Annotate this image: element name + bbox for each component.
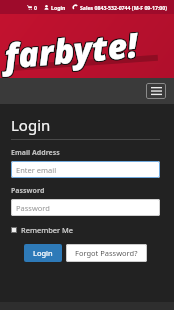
- staticText: 0: [34, 4, 37, 11]
- staticText: Forgot Password?: [75, 248, 138, 258]
- staticText: Password: [11, 186, 45, 196]
- other: Account: [44, 5, 49, 10]
- other: Phone: [73, 5, 78, 10]
- staticText: farbyte!: [2, 21, 140, 79]
- staticText: Login: [11, 115, 51, 135]
- button[interactable]: Password: [11, 199, 160, 216]
- staticText: farbyte!: [3, 20, 141, 78]
- button[interactable]: Forgot Password?: [66, 244, 147, 262]
- button[interactable]: Account: [43, 4, 67, 11]
- button[interactable]: Menu: [146, 83, 166, 99]
- staticText: Login: [33, 248, 53, 258]
- button[interactable]: Phone: [72, 4, 169, 11]
- staticText: farbyte!: [1, 20, 139, 78]
- button[interactable]: farbyte! home: [2, 21, 140, 79]
- button[interactable]: Enter email: [11, 161, 160, 178]
- staticText: Password: [16, 203, 50, 213]
- staticText: Remember Me: [21, 225, 74, 235]
- staticText: farbyte!: [2, 20, 140, 78]
- staticText: farbyte!: [2, 22, 140, 80]
- staticText: Login: [51, 4, 66, 11]
- staticText: Enter email: [16, 165, 57, 175]
- staticText: farbyte!: [3, 21, 141, 79]
- staticText: farbyte!: [3, 22, 141, 80]
- staticText: farbyte!: [1, 22, 139, 80]
- button[interactable]: Remember Me: [11, 224, 74, 236]
- other: Cart: [27, 5, 32, 10]
- staticText: farbyte!: [1, 21, 139, 79]
- staticText: Email Address: [11, 148, 60, 158]
- staticText: Sales 0843-532-0744 (M-F 09-17:00): [80, 4, 168, 11]
- button[interactable]: Cart: [26, 4, 38, 11]
- button[interactable]: Login: [24, 244, 62, 262]
